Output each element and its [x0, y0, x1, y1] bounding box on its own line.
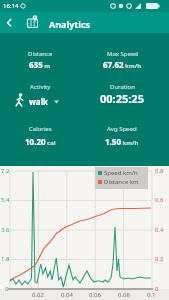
- staticText: 0.1: [147, 291, 156, 299]
- button[interactable]: [12, 89, 64, 107]
- staticText: Distance km: [104, 178, 139, 186]
- staticText: 0.08: [118, 291, 130, 299]
- staticText: 3.6: [1, 226, 10, 234]
- staticText: 5.4: [1, 196, 10, 204]
- staticText: 0.02: [32, 291, 44, 299]
- staticText: 0.6: [155, 196, 164, 204]
- staticText: 0.2: [155, 255, 164, 263]
- staticText: Analytics: [49, 18, 91, 30]
- button[interactable]: [2, 14, 19, 31]
- staticText: 0.8: [155, 167, 164, 175]
- staticText: 0.06: [89, 291, 101, 299]
- staticText: 0: [5, 285, 9, 293]
- staticText: 16:14: [3, 2, 19, 10]
- staticText: 7.2: [1, 167, 10, 175]
- staticText: 0.04: [61, 291, 73, 299]
- staticText: Max Speed: [107, 50, 138, 58]
- staticText: Activity: [30, 83, 51, 91]
- staticText: 10.20 cal: [25, 136, 56, 147]
- staticText: Avg Speed: [107, 125, 137, 133]
- staticText: Speed km/h: [104, 169, 138, 177]
- staticText: Calories: [29, 125, 52, 133]
- staticText: Distance: [28, 50, 53, 58]
- staticText: 67.62 km/h: [103, 59, 142, 70]
- staticText: 0.4: [155, 226, 164, 234]
- staticText: 0: [155, 285, 159, 293]
- staticText: 00:25:25: [100, 91, 144, 106]
- staticText: 1.50 km/h: [105, 136, 139, 147]
- staticText: walk: [29, 96, 48, 107]
- staticText: 1.8: [1, 255, 10, 263]
- staticText: Duration: [110, 83, 135, 91]
- staticText: 635 m: [29, 59, 51, 70]
